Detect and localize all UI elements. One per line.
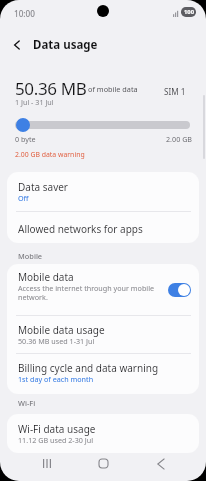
staticText: Allowed networks for apps <box>18 222 143 236</box>
staticText: 1st day of each month <box>18 374 94 384</box>
button[interactable]: Back <box>132 450 189 481</box>
button[interactable]: Data saver <box>7 172 199 209</box>
staticText: 2.00 GB <box>166 134 193 144</box>
staticText: of mobile data <box>88 84 138 94</box>
staticText: 100 <box>184 8 194 16</box>
staticText: Mobile data <box>18 270 74 284</box>
staticText: SIM 1 <box>164 86 186 97</box>
staticText: 11.12 GB used 2-30 Jul <box>18 435 94 445</box>
staticText: Access the internet through your mobile … <box>18 283 168 302</box>
button[interactable]: Mobile data usage <box>7 315 199 353</box>
staticText: 0 byte <box>15 134 36 144</box>
button[interactable]: Back <box>6 34 28 56</box>
button[interactable]: Recent apps <box>18 450 75 481</box>
staticText: Data usage <box>33 37 98 53</box>
button[interactable]: Home <box>75 450 132 481</box>
staticText: 50.36 MB <box>15 77 87 100</box>
staticText: Mobile data usage <box>18 323 105 337</box>
staticText: Mobile <box>18 251 43 261</box>
staticText: Wi-Fi data usage <box>18 422 96 436</box>
staticText: 10:00 <box>14 8 35 19</box>
staticText: 50.36 MB used 1-31 Jul <box>18 336 95 346</box>
button[interactable]: Allowed networks for apps <box>7 211 199 243</box>
staticText: Off <box>18 193 29 203</box>
button[interactable]: Billing cycle and data warning <box>7 353 199 394</box>
staticText: 2.00 GB data warning <box>15 150 85 159</box>
staticText: Wi-Fi <box>18 398 36 408</box>
button[interactable]: Mobile data <box>7 264 199 315</box>
staticText: Billing cycle and data warning <box>18 361 159 375</box>
staticText: Data saver <box>18 180 68 194</box>
staticText: 1 Jul - 31 Jul <box>15 97 54 107</box>
button[interactable]: Wi-Fi data usage <box>7 414 199 453</box>
